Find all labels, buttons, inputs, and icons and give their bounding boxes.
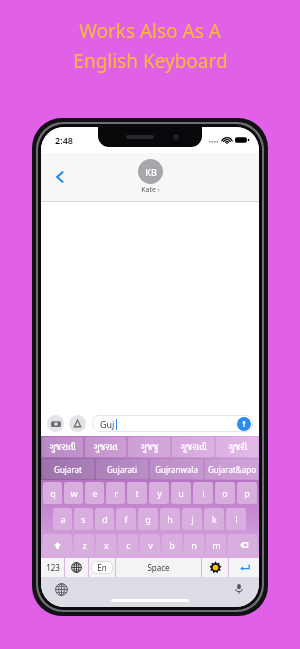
staticText: 2:48 (55, 134, 73, 146)
button[interactable]: w (64, 482, 83, 504)
button[interactable]: En (89, 558, 115, 577)
button[interactable]: Send (237, 417, 251, 431)
button[interactable]: Gujarati (96, 459, 148, 479)
button[interactable]: c (118, 534, 138, 556)
staticText: v (148, 539, 153, 551)
button[interactable]: Apps (69, 415, 86, 432)
staticText: g (145, 513, 151, 525)
staticText: l (235, 513, 238, 525)
button[interactable]: Language (53, 581, 69, 597)
button[interactable]: o (215, 482, 235, 504)
staticText: › (157, 185, 160, 195)
button[interactable]: Gujranwala (150, 459, 203, 479)
staticText: ગુજરાત (93, 440, 118, 455)
staticText: ગુજરાતી (49, 440, 76, 455)
button[interactable]: z (74, 534, 94, 556)
staticText: c (126, 539, 131, 551)
staticText: Gujranwala (155, 464, 198, 475)
staticText: m (212, 539, 221, 551)
staticText: En (97, 562, 107, 573)
button[interactable]: b (162, 534, 182, 556)
button[interactable]: m (206, 534, 226, 556)
button[interactable]: ગૂજરાતી (172, 437, 214, 457)
staticText: p (244, 487, 250, 499)
button[interactable]: Back (45, 162, 75, 192)
button[interactable]: q (43, 482, 62, 504)
button[interactable]: Gujarat (42, 459, 94, 479)
staticText: k (212, 513, 217, 525)
button[interactable]: Change language (65, 558, 88, 577)
button[interactable]: t (127, 482, 147, 504)
button[interactable]: v (140, 534, 160, 556)
button[interactable] (43, 534, 72, 556)
staticText: x (104, 539, 109, 551)
staticText: Gujarat&apo (208, 464, 256, 475)
staticText: Works Also As A (79, 18, 221, 44)
button[interactable]: Gujarat&apo (205, 459, 258, 479)
button[interactable]: i (193, 482, 213, 504)
staticText: Space (147, 562, 170, 573)
staticText: z (82, 539, 87, 551)
staticText: ગુજજુ (140, 440, 159, 455)
button[interactable]: Return (229, 558, 259, 577)
staticText: Guj (100, 418, 115, 430)
button[interactable]: Camera (47, 415, 64, 432)
button[interactable]: ગુજરાત (85, 437, 126, 457)
staticText: ગૂજરાતી (180, 440, 207, 455)
button[interactable]: ગુજરાતી (42, 437, 83, 457)
staticText: b (169, 539, 175, 551)
button[interactable]: l (226, 508, 246, 530)
button[interactable]: j (182, 508, 202, 530)
staticText: Kate (141, 185, 156, 195)
button[interactable] (228, 534, 257, 556)
staticText: u (178, 487, 184, 499)
button[interactable]: KB (138, 159, 163, 195)
staticText: f (124, 513, 128, 525)
staticText: KB (145, 166, 157, 178)
staticText: t (135, 487, 139, 499)
button[interactable]: s (74, 508, 93, 530)
button[interactable]: p (237, 482, 257, 504)
button[interactable]: e (85, 482, 104, 504)
button[interactable]: f (116, 508, 136, 530)
button[interactable]: d (95, 508, 114, 530)
button[interactable]: n (184, 534, 204, 556)
staticText: h (167, 513, 173, 525)
staticText: n (191, 539, 197, 551)
staticText: j (191, 513, 194, 525)
button[interactable]: Settings (202, 558, 228, 577)
staticText: w (70, 487, 78, 499)
button[interactable]: x (96, 534, 116, 556)
button[interactable]: y (149, 482, 169, 504)
button[interactable]: Guj (92, 415, 253, 432)
button[interactable]: h (160, 508, 180, 530)
staticText: y (157, 487, 162, 499)
staticText: ગુજરી (228, 440, 247, 455)
button[interactable]: ગુજજુ (128, 437, 170, 457)
staticText: Gujarati (107, 464, 137, 475)
staticText: s (81, 513, 86, 525)
staticText: 123 (46, 562, 60, 573)
button[interactable]: a (53, 508, 72, 530)
button[interactable]: 123 (41, 558, 64, 577)
staticText: e (92, 487, 98, 499)
staticText: o (222, 487, 228, 499)
button[interactable]: g (138, 508, 158, 530)
staticText: a (60, 513, 66, 525)
staticText: Gujarat (54, 464, 82, 475)
button[interactable]: Dictate (231, 581, 247, 597)
staticText: i (202, 487, 205, 499)
staticText: r (114, 487, 118, 499)
staticText: English Keyboard (73, 48, 228, 74)
staticText: q (50, 487, 56, 499)
button[interactable]: ગુજરી (216, 437, 258, 457)
button[interactable]: k (204, 508, 224, 530)
button[interactable]: Space (116, 558, 201, 577)
staticText: d (102, 513, 108, 525)
button[interactable]: u (171, 482, 191, 504)
button[interactable]: r (106, 482, 125, 504)
